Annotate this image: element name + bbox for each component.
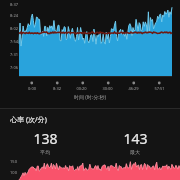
staticText: 7:31 bbox=[10, 52, 18, 57]
staticText: 8:24 bbox=[10, 13, 18, 18]
staticText: 30:00 bbox=[102, 86, 113, 91]
button[interactable]: 138 bbox=[0, 129, 90, 155]
staticText: 7:54 bbox=[10, 39, 18, 44]
other: Heart rate chart bbox=[0, 158, 180, 180]
button[interactable]: 心率 (次/分) bbox=[0, 109, 180, 180]
staticText: 7:06 bbox=[10, 65, 18, 70]
staticText: 138 bbox=[33, 129, 58, 148]
staticText: 57:51 bbox=[154, 86, 165, 91]
button[interactable]: 143 bbox=[90, 129, 180, 155]
staticText: 0:00 bbox=[28, 86, 36, 91]
staticText: 平均 bbox=[40, 149, 50, 155]
staticText: 时间 (时:分:秒) bbox=[74, 94, 106, 101]
staticText: 46:29 bbox=[128, 86, 139, 91]
staticText: 最大 bbox=[130, 149, 140, 155]
staticText: 00:20 bbox=[76, 86, 87, 91]
staticText: 8:02 bbox=[10, 26, 18, 31]
staticText: 143 bbox=[123, 129, 148, 148]
staticText: 8:32 bbox=[53, 86, 61, 91]
other: Pace chart bbox=[0, 0, 180, 108]
staticText: 8:37 bbox=[10, 2, 18, 7]
staticText: 150 bbox=[10, 159, 17, 164]
staticText: 心率 (次/分) bbox=[10, 115, 47, 125]
staticText: 100 bbox=[10, 170, 17, 175]
button[interactable]: Pace chart bbox=[0, 0, 180, 108]
